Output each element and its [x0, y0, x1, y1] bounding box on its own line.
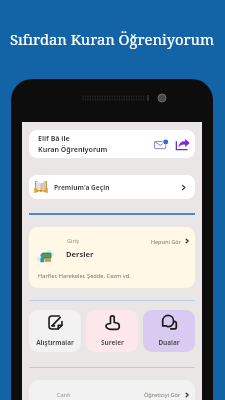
- staticText: Harfler, Harekeler, Şedde, Cezm vd.: [38, 272, 131, 280]
- button[interactable]: Giriş: [29, 227, 195, 288]
- staticText: Giriş: [67, 237, 79, 245]
- staticText: Sıfırdan Kuran Öğreniyorum: [10, 29, 214, 49]
- button[interactable]: Sureler: [86, 310, 138, 352]
- button[interactable]: Premium'a Geçin: [29, 175, 195, 199]
- staticText: Kuran Öğreniyorum: [38, 145, 108, 155]
- button[interactable]: Elif Bâ ile: [29, 130, 195, 158]
- staticText: Öğreticiyi Gör: [144, 391, 181, 399]
- staticText: Dersler: [66, 249, 94, 259]
- button[interactable]: Mesajlar: [154, 137, 169, 152]
- button[interactable]: Dualar: [143, 310, 195, 352]
- button[interactable]: Canlı: [29, 380, 195, 400]
- staticText: Hepsini Gör: [151, 238, 181, 245]
- staticText: Premium'a Geçin: [54, 183, 110, 192]
- staticText: Dualar: [158, 338, 180, 347]
- button[interactable]: Alıştırmalar: [29, 310, 81, 352]
- staticText: Canlı: [57, 391, 71, 399]
- staticText: Elif Bâ ile: [38, 134, 70, 144]
- staticText: Alıştırmalar: [36, 338, 74, 347]
- staticText: Sureler: [101, 338, 124, 347]
- button[interactable]: Paylaş: [175, 137, 190, 152]
